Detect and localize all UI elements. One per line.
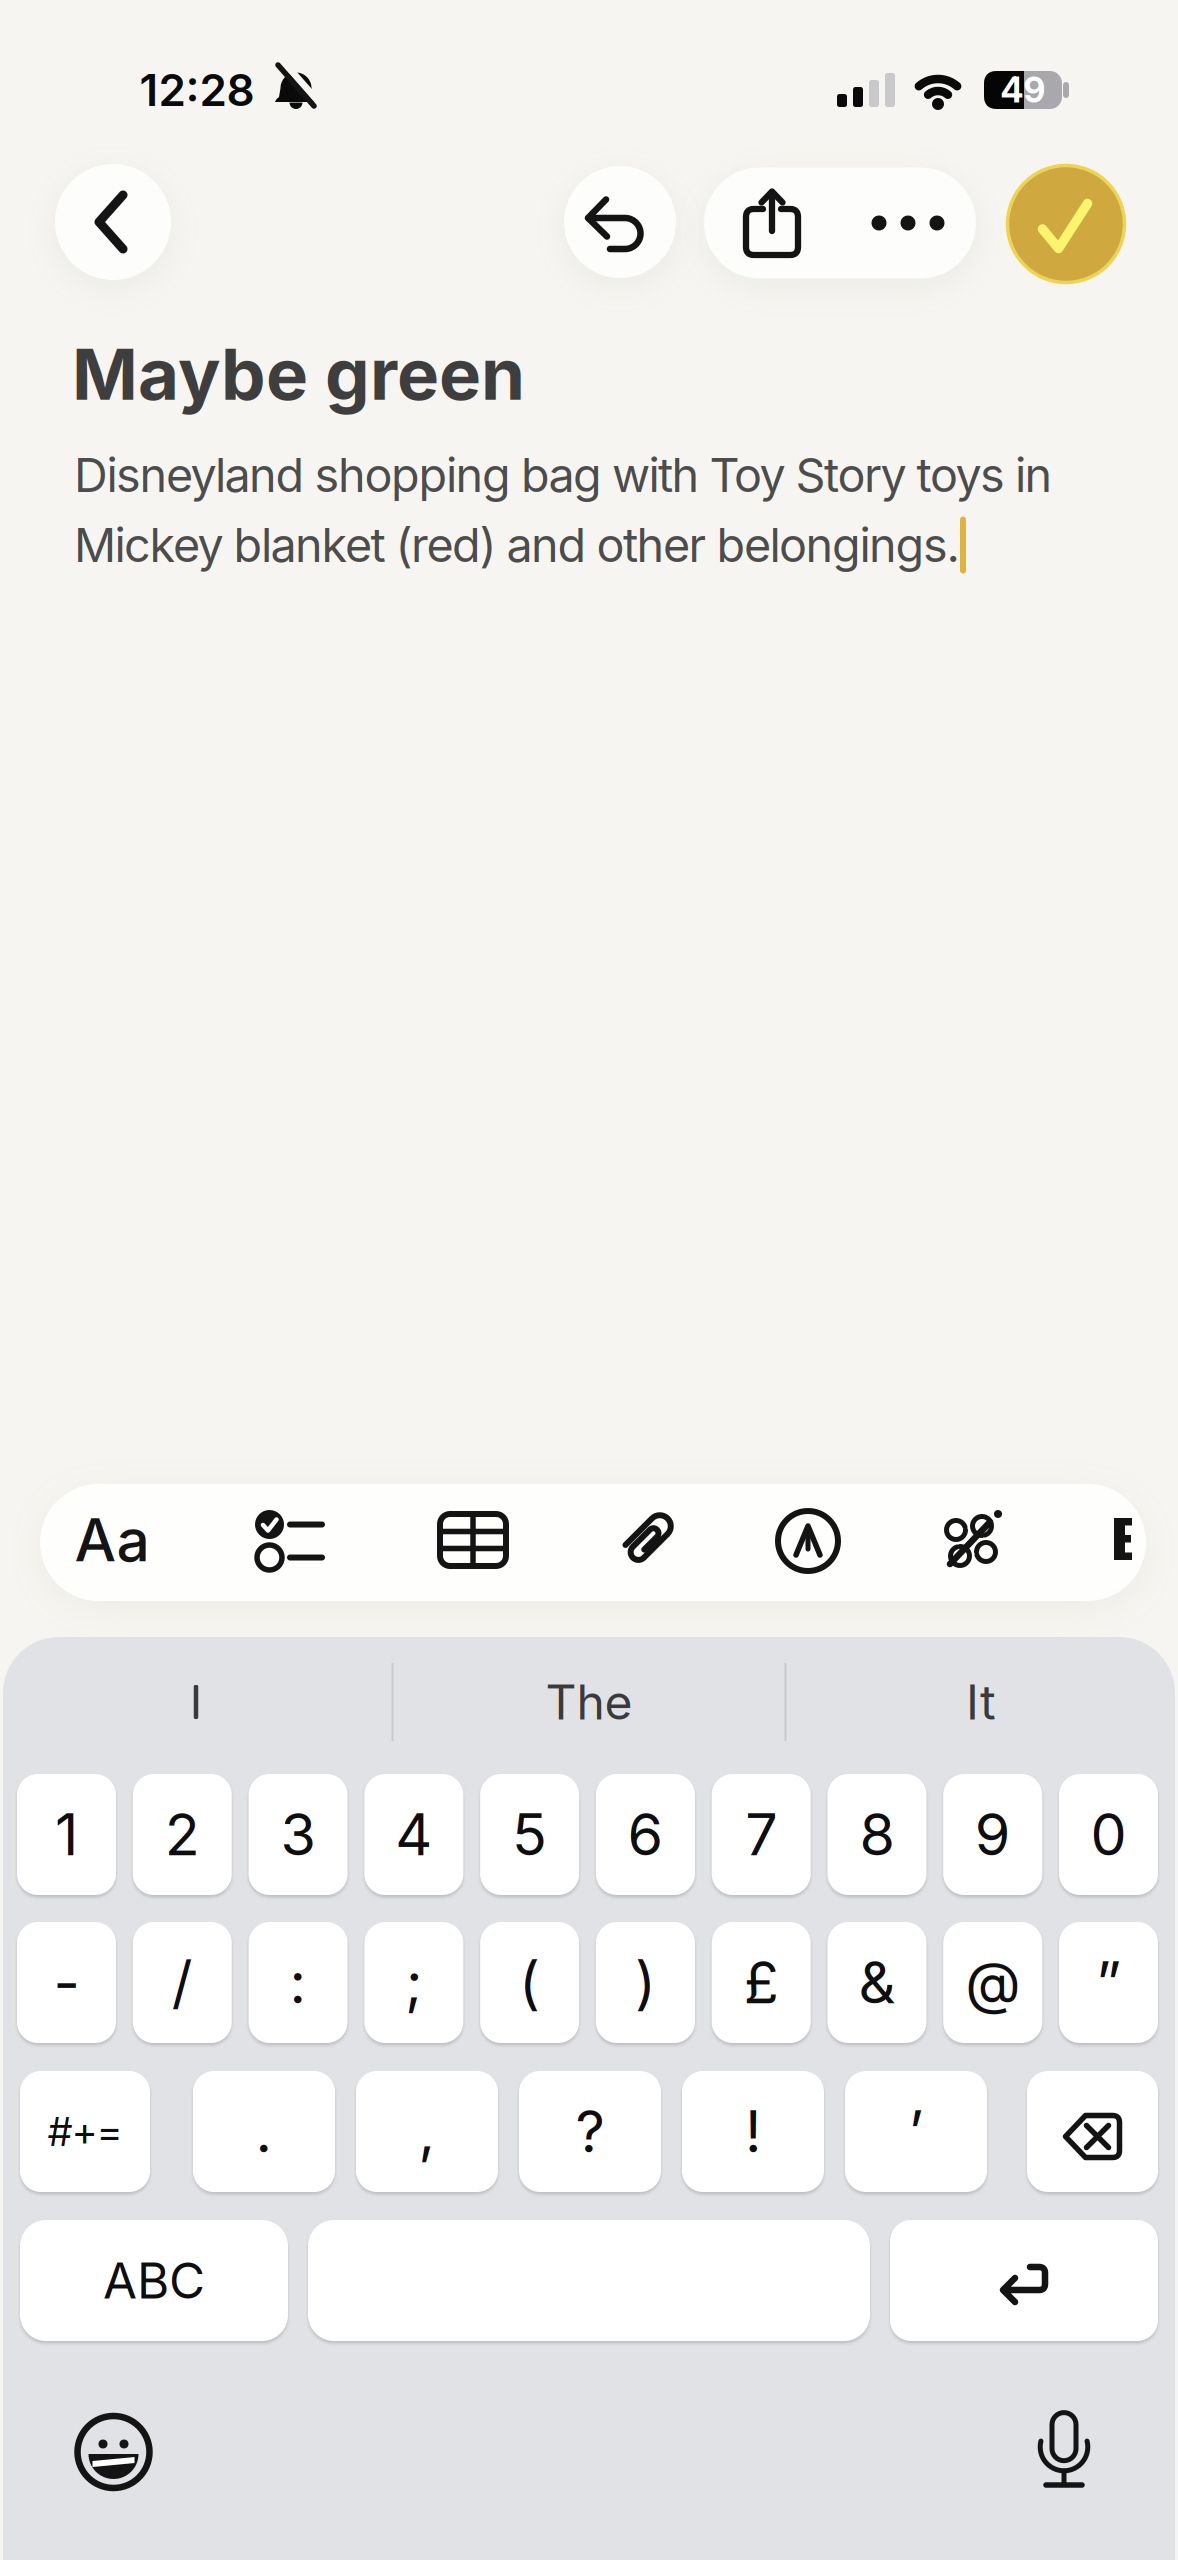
staticText: , (418, 2098, 435, 2165)
button[interactable]: #+= (20, 2071, 150, 2192)
button[interactable] (1024, 2408, 1104, 2488)
button[interactable]: ” (1059, 1922, 1158, 2043)
button[interactable]: ABC (20, 2220, 288, 2341)
staticText: ? (575, 2098, 604, 2165)
staticText: . (255, 2098, 272, 2165)
button[interactable] (564, 166, 676, 278)
button[interactable]: ’ (845, 2071, 987, 2192)
button[interactable] (704, 167, 840, 278)
button[interactable]: ( (480, 1922, 579, 2043)
staticText: ABC (103, 2251, 205, 2310)
button[interactable]: 2 (133, 1774, 232, 1895)
staticText: ’ (908, 2098, 923, 2165)
button[interactable]: 9 (943, 1774, 1042, 1895)
staticText: The (545, 1674, 632, 1730)
staticText: @ (965, 1949, 1020, 2016)
button[interactable] (586, 1481, 706, 1598)
staticText: 12:28 (139, 64, 254, 116)
staticText: Aa (74, 1505, 149, 1575)
staticText: 49 (1000, 70, 1045, 110)
button[interactable]: 8 (827, 1774, 926, 1895)
button[interactable]: , (356, 2071, 498, 2192)
staticText: #+= (48, 2108, 122, 2155)
button[interactable] (1114, 1518, 1132, 1560)
button[interactable] (73, 2412, 153, 2492)
button[interactable]: : (249, 1922, 348, 2043)
button[interactable]: Aa (52, 1481, 172, 1598)
button[interactable] (1006, 164, 1125, 283)
button[interactable]: The (399, 1647, 779, 1757)
staticText: 2 (165, 1801, 200, 1868)
staticText: Disneyland shopping bag with Toy Story t… (74, 447, 1052, 503)
button[interactable]: & (827, 1922, 926, 2043)
staticText: 9 (975, 1801, 1011, 1868)
button[interactable] (840, 167, 976, 278)
button[interactable] (6, 1647, 386, 1757)
staticText: It (966, 1674, 996, 1730)
staticText: & (858, 1949, 895, 2016)
button[interactable]: 4 (364, 1774, 463, 1895)
staticText: 0 (1090, 1801, 1126, 1868)
button[interactable]: - (17, 1922, 116, 2043)
button[interactable]: It (791, 1647, 1171, 1757)
button[interactable] (1027, 2071, 1158, 2192)
button[interactable]: 1 (17, 1774, 116, 1895)
staticText: ; (405, 1949, 422, 2016)
button[interactable] (229, 1482, 349, 1599)
button[interactable]: 3 (249, 1774, 348, 1895)
button[interactable]: 5 (480, 1774, 579, 1895)
button[interactable] (413, 1481, 533, 1598)
staticText: 5 (512, 1801, 547, 1868)
staticText: 8 (859, 1801, 894, 1868)
button[interactable]: 7 (712, 1774, 811, 1895)
button[interactable]: . (193, 2071, 335, 2192)
staticText: Mickey blanket (red) and other belonging… (74, 517, 959, 573)
staticText: Maybe green (72, 332, 525, 416)
button[interactable] (748, 1482, 868, 1599)
button[interactable]: ? (519, 2071, 661, 2192)
button[interactable]: / (133, 1922, 232, 2043)
button[interactable] (308, 2220, 870, 2341)
button[interactable] (890, 2220, 1158, 2341)
button[interactable]: ) (596, 1922, 695, 2043)
staticText: - (53, 1949, 79, 2016)
button[interactable]: 6 (596, 1774, 695, 1895)
staticText: ! (745, 2098, 761, 2165)
button[interactable]: ! (682, 2071, 824, 2192)
staticText: ( (519, 1949, 540, 2016)
staticText: 7 (745, 1801, 777, 1868)
staticText: ) (635, 1949, 656, 2016)
button[interactable] (55, 164, 171, 280)
staticText: 3 (281, 1801, 316, 1868)
button[interactable]: ; (364, 1922, 463, 2043)
button[interactable]: £ (712, 1922, 811, 2043)
staticText: £ (744, 1949, 779, 2016)
staticText: ” (1096, 1949, 1121, 2016)
button[interactable]: @ (943, 1922, 1042, 2043)
button[interactable]: 0 (1059, 1774, 1158, 1895)
staticText: 6 (627, 1801, 663, 1868)
staticText: 1 (55, 1801, 78, 1868)
staticText: / (172, 1949, 193, 2016)
button[interactable] (911, 1481, 1031, 1598)
staticText: : (290, 1949, 307, 2016)
staticText: 4 (395, 1801, 432, 1868)
